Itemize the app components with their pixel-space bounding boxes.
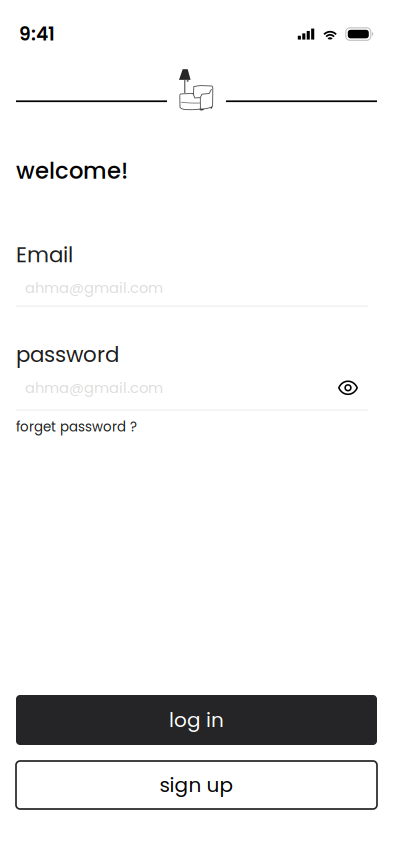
button[interactable]: forget password ? <box>0 417 393 436</box>
staticText: sign up <box>159 771 233 799</box>
staticText: ahma@gmail.com <box>25 278 163 298</box>
staticText: password <box>16 340 119 369</box>
staticText: log in <box>169 706 224 734</box>
button[interactable]: Show password <box>338 380 368 395</box>
button[interactable]: log in <box>16 695 377 745</box>
button[interactable]: sign up <box>16 761 377 809</box>
staticText: Email <box>16 240 73 270</box>
staticText: forget password ? <box>16 417 137 436</box>
staticText: ahma@gmail.com <box>25 377 163 398</box>
staticText: 9:41 <box>19 21 55 47</box>
staticText: welcome! <box>16 155 128 187</box>
